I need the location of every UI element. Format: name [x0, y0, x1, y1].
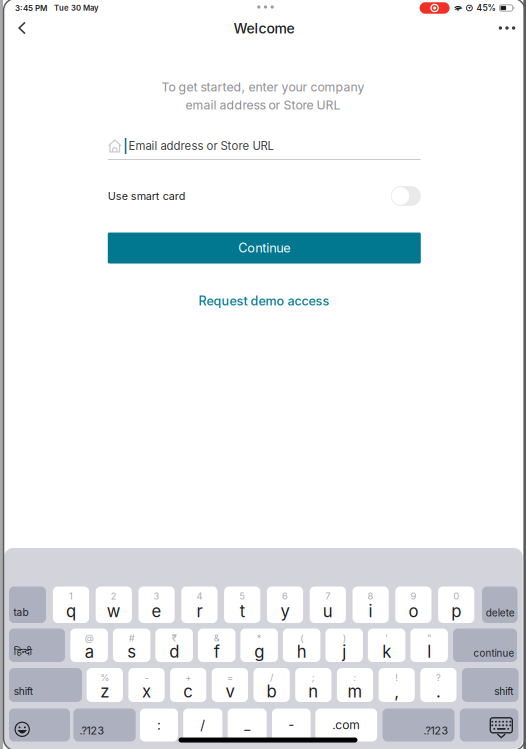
- button[interactable]: ₹: [155, 628, 193, 662]
- staticText: w: [107, 601, 121, 621]
- staticText: Welcome: [233, 20, 294, 37]
- button[interactable]: Continue: [108, 232, 421, 263]
- button[interactable]: ": [410, 628, 448, 662]
- staticText: 45%: [476, 3, 495, 13]
- staticText: y: [280, 601, 289, 621]
- staticText: l: [427, 642, 431, 662]
- button[interactable]: 2: [96, 586, 132, 623]
- button[interactable]: /: [253, 668, 290, 702]
- button[interactable]: .?123: [73, 708, 136, 741]
- button[interactable]: 1: [53, 586, 89, 623]
- button[interactable]: हिन्दी: [9, 628, 65, 662]
- staticText: delete: [486, 607, 515, 619]
- staticText: b: [267, 681, 277, 702]
- button[interactable]: 7: [310, 586, 346, 623]
- staticText: ,: [394, 681, 399, 702]
- staticText: Request demo access: [198, 293, 329, 309]
- button[interactable]: Request demo access: [164, 290, 364, 312]
- button[interactable]: !: [379, 668, 415, 702]
- button[interactable]: ?: [420, 668, 456, 702]
- button[interactable]: *: [240, 628, 278, 662]
- button[interactable]: shift: [9, 668, 82, 702]
- staticText: +: [185, 672, 191, 683]
- staticText: हिन्दी: [14, 644, 33, 658]
- button[interactable]: More options: [490, 13, 524, 43]
- button[interactable]: Emoji: [9, 708, 70, 741]
- staticText: s: [127, 642, 136, 662]
- button[interactable]: 8: [352, 586, 389, 623]
- button[interactable]: -: [128, 668, 165, 702]
- staticText: 3:45 PM: [15, 3, 47, 13]
- staticText: continue: [473, 647, 514, 659]
- button[interactable]: continue: [453, 628, 517, 662]
- button[interactable]: %: [87, 668, 123, 702]
- button[interactable]: ;: [295, 668, 331, 702]
- staticText: #: [129, 632, 135, 644]
- staticText: z: [100, 681, 109, 702]
- staticText: (: [300, 632, 303, 644]
- staticText: c: [183, 681, 193, 702]
- button[interactable]: =: [212, 668, 248, 702]
- staticText: shift: [14, 685, 33, 697]
- button[interactable]: shift: [462, 668, 518, 702]
- button[interactable]: ': [368, 628, 405, 662]
- staticText: a: [85, 642, 94, 662]
- staticText: g: [254, 642, 264, 662]
- staticText: .: [436, 681, 441, 702]
- button[interactable]: Use smart card: [108, 182, 421, 210]
- staticText: j: [342, 642, 346, 662]
- staticText: 2: [111, 590, 117, 602]
- staticText: 8: [368, 590, 374, 602]
- button[interactable]: Back: [5, 13, 39, 43]
- button[interactable]: tab: [9, 586, 46, 623]
- staticText: =: [227, 672, 233, 683]
- button[interactable]: :: [337, 668, 373, 702]
- staticText: n: [308, 681, 318, 702]
- staticText: 1: [69, 590, 73, 602]
- button[interactable]: 0: [438, 586, 474, 623]
- staticText: tab: [14, 606, 29, 618]
- staticText: shift: [494, 685, 513, 697]
- button[interactable]: -: [272, 708, 311, 741]
- staticText: x: [142, 681, 151, 702]
- staticText: Email address or Store URL: [128, 139, 273, 153]
- button[interactable]: .?123: [382, 708, 454, 741]
- button[interactable]: 9: [395, 586, 431, 623]
- staticText: ?: [436, 672, 441, 683]
- button[interactable]: .com: [315, 708, 377, 741]
- button[interactable]: 5: [224, 586, 260, 623]
- staticText: !: [395, 672, 398, 683]
- button[interactable]: 4: [181, 586, 217, 623]
- button[interactable]: /: [183, 708, 222, 741]
- staticText: Tue 30 May: [54, 3, 99, 13]
- staticText: To get started, enter your company: [161, 80, 364, 94]
- button[interactable]: #: [113, 628, 150, 662]
- staticText: %: [100, 672, 109, 683]
- button[interactable]: @: [70, 628, 108, 662]
- staticText: d: [169, 642, 179, 662]
- button[interactable]: (: [283, 628, 320, 662]
- staticText: :: [157, 717, 161, 733]
- staticText: Continue: [238, 240, 290, 256]
- staticText: 7: [325, 590, 330, 602]
- button[interactable]: Hide keyboard: [460, 708, 518, 741]
- button[interactable]: 3: [138, 586, 175, 623]
- staticText: 4: [196, 590, 202, 602]
- button[interactable]: :: [140, 708, 178, 741]
- staticText: -: [144, 672, 148, 683]
- staticText: :: [353, 672, 356, 683]
- button[interactable]: ): [325, 628, 363, 662]
- staticText: o: [408, 601, 418, 621]
- button[interactable]: +: [170, 668, 206, 702]
- button[interactable]: delete: [482, 586, 517, 623]
- staticText: m: [347, 681, 362, 702]
- staticText: /: [270, 672, 273, 683]
- button[interactable]: 6: [267, 586, 303, 623]
- staticText: .?123: [423, 724, 448, 737]
- staticText: k: [382, 642, 391, 662]
- staticText: ₹: [172, 632, 177, 644]
- button[interactable]: &: [198, 628, 235, 662]
- button[interactable]: _: [228, 708, 267, 741]
- staticText: .?123: [79, 724, 104, 737]
- staticText: 3: [154, 590, 160, 602]
